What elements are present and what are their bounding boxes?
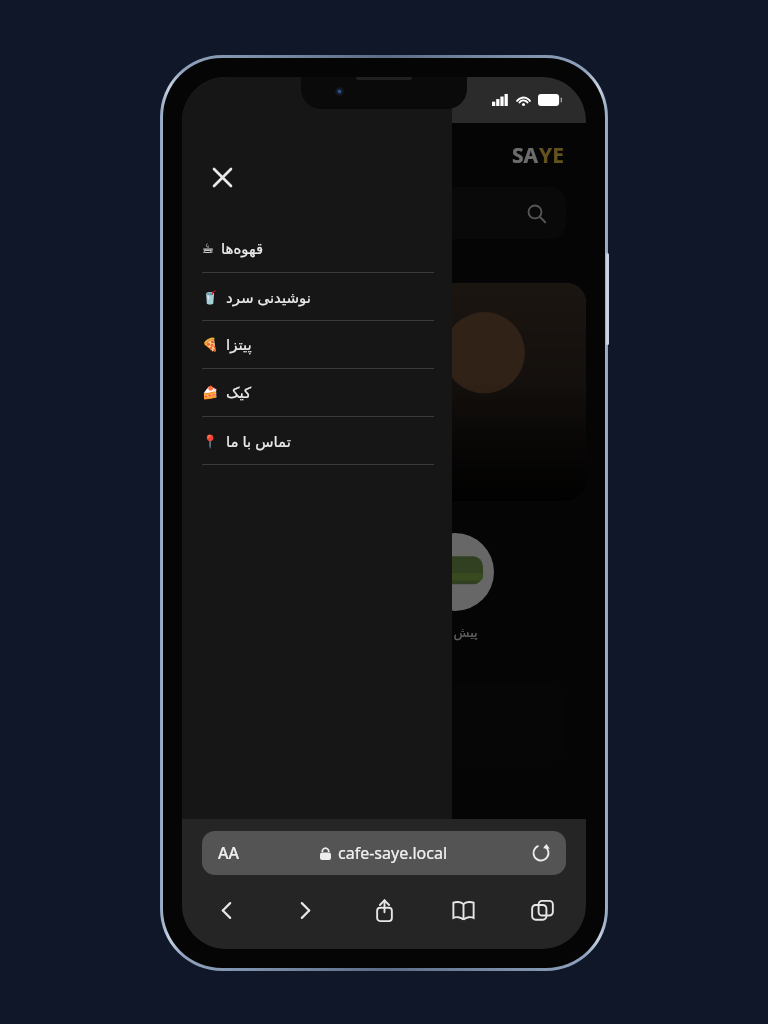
button[interactable]: AA	[202, 831, 566, 875]
staticText: پیش غذا	[433, 623, 478, 641]
staticText: 🍰	[202, 385, 219, 400]
button[interactable]: Back	[204, 888, 248, 932]
button[interactable]	[416, 533, 494, 611]
staticText: SA	[512, 141, 539, 170]
button[interactable]: 🍰	[182, 369, 452, 416]
button[interactable]: Share	[362, 888, 406, 932]
button[interactable]: 🍕	[182, 321, 452, 368]
staticText: نوشیدنی سرد	[226, 287, 311, 307]
button[interactable]: Forward	[283, 888, 327, 932]
button[interactable]: Close menu	[200, 155, 244, 199]
button[interactable]: Tabs	[520, 888, 564, 932]
staticText: قهوه‌ها	[221, 240, 264, 257]
staticText: cafe-saye.local	[338, 842, 448, 864]
button[interactable]: Bookmarks	[441, 888, 485, 932]
button[interactable]: New	[202, 283, 387, 501]
button[interactable]: 🥤	[182, 273, 452, 320]
button[interactable]: Reload	[530, 842, 552, 864]
staticText: AA	[218, 842, 239, 864]
staticText: 🥤	[202, 290, 219, 305]
button[interactable]	[401, 283, 586, 501]
staticText: ☕	[202, 241, 214, 256]
staticText: تماس با ما	[226, 431, 291, 451]
staticText: پیتزا	[226, 336, 252, 353]
staticText: کیک	[226, 384, 252, 401]
staticText: 📍	[202, 434, 219, 449]
staticText: 🍕	[202, 337, 219, 352]
button[interactable]: ☕	[182, 225, 452, 272]
staticText: YE	[539, 141, 564, 170]
staticText: چیزکیک نیویورکی	[282, 447, 375, 465]
button[interactable]: 📍	[182, 417, 452, 464]
